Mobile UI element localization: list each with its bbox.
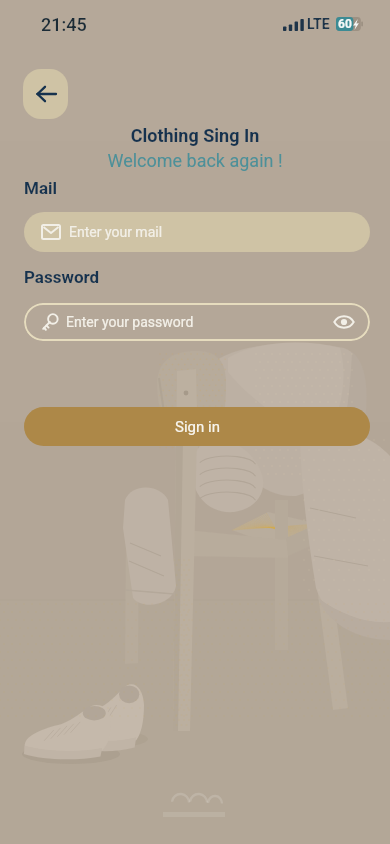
- button[interactable]: Enter your mail: [24, 212, 370, 252]
- staticText: Mail: [24, 178, 57, 198]
- staticText: Clothing Sing In: [0, 125, 390, 146]
- staticText: LTE: [307, 16, 330, 32]
- staticText: 60: [338, 17, 352, 31]
- button[interactable]: Back: [23, 69, 68, 119]
- staticText: Enter your mail: [69, 224, 163, 240]
- staticText: Enter your password: [66, 314, 194, 330]
- staticText: Password: [24, 267, 100, 287]
- button[interactable]: Enter your password: [24, 303, 370, 341]
- staticText: 21:45: [41, 14, 87, 35]
- staticText: Welcome back again !: [0, 150, 390, 171]
- button[interactable]: Sign in: [24, 407, 370, 446]
- button[interactable]: Show password: [333, 311, 355, 333]
- staticText: Sign in: [175, 418, 220, 436]
